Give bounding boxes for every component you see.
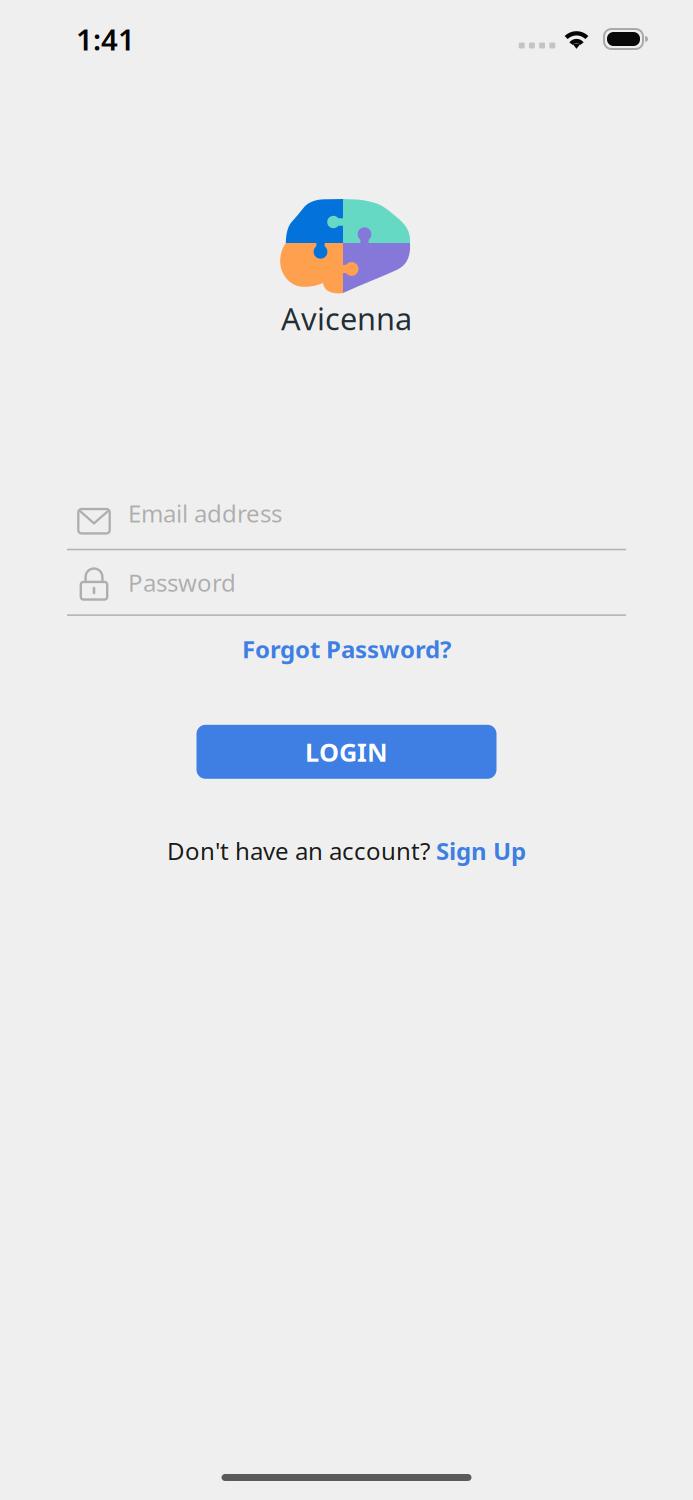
button[interactable]: Sign Up (436, 835, 526, 867)
staticText: Password (128, 566, 236, 598)
staticText: Email address (128, 497, 282, 529)
staticText: Sign Up (436, 835, 526, 867)
staticText: 1:41 (76, 19, 135, 58)
button[interactable]: Forgot Password? (224, 621, 469, 677)
button[interactable]: LOGIN (196, 725, 496, 779)
staticText: LOGIN (305, 735, 388, 769)
button[interactable]: Email address (67, 478, 626, 550)
staticText: Forgot Password? (242, 633, 451, 665)
staticText: Don't have an account? (167, 835, 436, 867)
staticText: Avicenna (281, 298, 412, 339)
button[interactable]: Password (67, 550, 626, 616)
